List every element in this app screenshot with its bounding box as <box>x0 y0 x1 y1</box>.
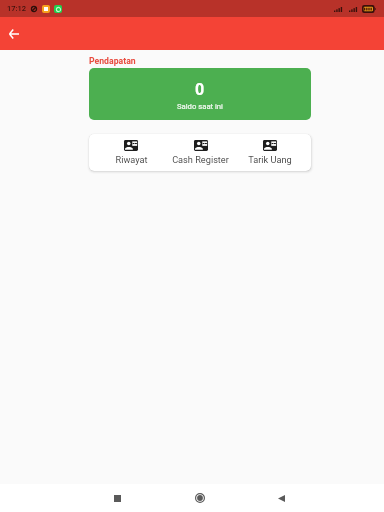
staticText: 17:12 <box>7 4 27 13</box>
button[interactable]: Cash Register <box>166 138 235 167</box>
staticText: Pendapatan <box>89 56 136 66</box>
staticText: Riwayat <box>115 154 148 165</box>
button[interactable]: Back <box>3 23 24 44</box>
button[interactable]: 0 <box>89 68 311 120</box>
staticText: Saldo saat ini <box>177 102 223 111</box>
button[interactable]: Riwayat <box>96 138 166 167</box>
staticText: 0 <box>195 80 205 99</box>
button[interactable]: Back <box>271 488 291 508</box>
button[interactable]: Home <box>190 488 210 508</box>
staticText: Tarik Uang <box>248 154 292 165</box>
staticText: Cash Register <box>172 154 229 165</box>
button[interactable]: Recents <box>107 488 127 508</box>
button[interactable]: Tarik Uang <box>235 138 304 167</box>
